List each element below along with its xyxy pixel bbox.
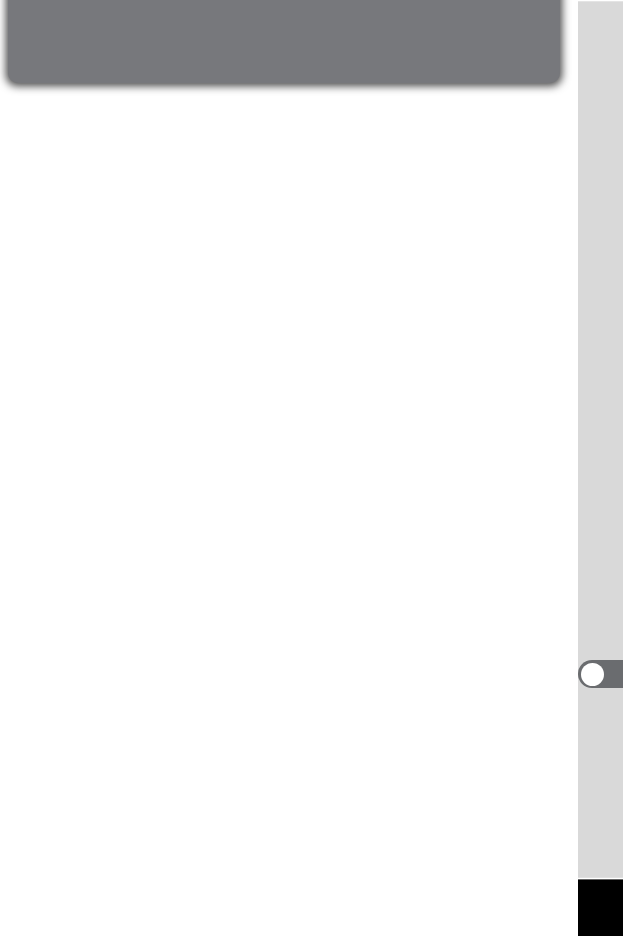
button[interactable]: Toggle switch, off (578, 660, 623, 688)
